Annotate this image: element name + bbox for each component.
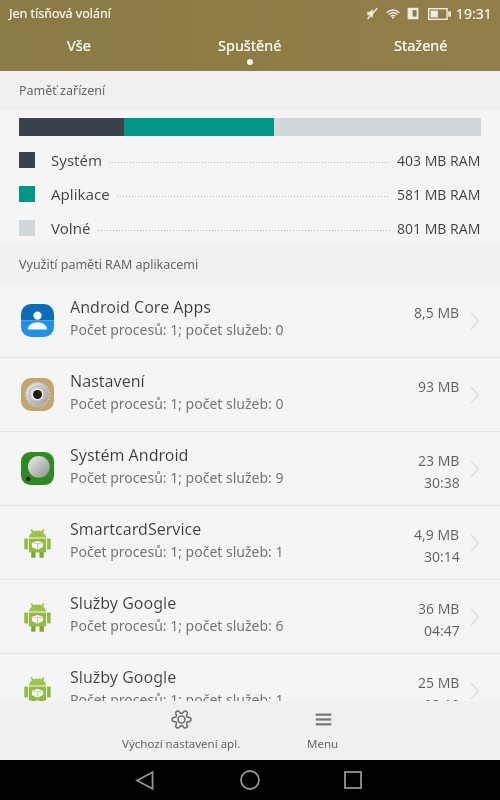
staticText: Služby Google bbox=[70, 666, 177, 688]
button[interactable]: Stažené bbox=[336, 27, 500, 71]
button[interactable]: Systém bbox=[0, 143, 500, 177]
staticText: Využití paměti RAM aplikacemi bbox=[19, 256, 199, 273]
staticText: 04:47 bbox=[424, 621, 460, 640]
staticText: Jen tísňová volání bbox=[9, 5, 111, 22]
staticText: Nastavení bbox=[70, 370, 145, 392]
staticText: Volné bbox=[51, 218, 91, 238]
button[interactable]: Menu bbox=[252, 701, 394, 760]
staticText: Vše bbox=[67, 35, 91, 55]
button[interactable]: Služby Google bbox=[0, 654, 500, 701]
staticText: Počet procesů: 1; počet služeb: 1 bbox=[70, 690, 284, 701]
staticText: 8,5 MB bbox=[414, 303, 460, 322]
staticText: 581 MB RAM bbox=[397, 185, 481, 204]
button[interactable]: Vše bbox=[0, 27, 164, 71]
button[interactable]: Systém Android bbox=[0, 432, 500, 506]
button[interactable]: Home bbox=[218, 760, 282, 800]
button[interactable]: Výchozí nastavení apl. bbox=[110, 701, 252, 760]
staticText: 03:19 bbox=[424, 695, 460, 701]
button[interactable]: Nastavení bbox=[0, 358, 500, 432]
staticText: Počet procesů: 1; počet služeb: 0 bbox=[70, 394, 284, 413]
staticText: 801 MB RAM bbox=[397, 219, 481, 238]
staticText: 19:31 bbox=[456, 4, 492, 23]
button[interactable]: Spuštěné bbox=[165, 27, 335, 71]
staticText: Počet procesů: 1; počet služeb: 1 bbox=[70, 542, 284, 561]
staticText: Android Core Apps bbox=[70, 296, 211, 318]
staticText: Počet procesů: 1; počet služeb: 6 bbox=[70, 616, 284, 635]
button[interactable]: Back bbox=[113, 760, 177, 800]
button[interactable]: SmartcardService bbox=[0, 506, 500, 580]
button[interactable]: Aplikace bbox=[0, 177, 500, 211]
staticText: 30:38 bbox=[424, 473, 460, 492]
staticText: Paměť zařízení bbox=[19, 82, 106, 99]
button[interactable]: Služby Google bbox=[0, 580, 500, 654]
staticText: Počet procesů: 1; počet služeb: 0 bbox=[70, 320, 284, 339]
staticText: 25 MB bbox=[418, 673, 460, 692]
staticText: 30:14 bbox=[424, 547, 460, 566]
staticText: 93 MB bbox=[418, 377, 460, 396]
staticText: Počet procesů: 1; počet služeb: 9 bbox=[70, 468, 284, 487]
button[interactable]: Android Core Apps bbox=[0, 284, 500, 358]
staticText: Stažené bbox=[394, 35, 448, 55]
staticText: Spuštěné bbox=[218, 35, 282, 55]
button[interactable]: Volné bbox=[0, 211, 500, 245]
staticText: Aplikace bbox=[51, 184, 110, 204]
staticText: Systém Android bbox=[70, 444, 189, 466]
staticText: Výchozí nastavení apl. bbox=[122, 736, 241, 752]
button[interactable]: Recents bbox=[321, 760, 385, 800]
staticText: Menu bbox=[307, 736, 339, 752]
staticText: 403 MB RAM bbox=[397, 151, 481, 170]
staticText: 23 MB bbox=[418, 451, 460, 470]
staticText: SmartcardService bbox=[70, 518, 202, 540]
staticText: 4,9 MB bbox=[414, 525, 460, 544]
staticText: Služby Google bbox=[70, 592, 177, 614]
staticText: 36 MB bbox=[418, 599, 460, 618]
staticText: Systém bbox=[51, 150, 102, 170]
